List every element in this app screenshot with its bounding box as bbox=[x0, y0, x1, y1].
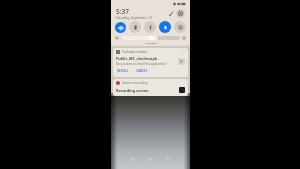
button[interactable]: Wi-Fi bbox=[115, 22, 126, 33]
staticText: Do you want to install this application? bbox=[116, 62, 167, 66]
staticText: Saturday, September 13 bbox=[116, 16, 152, 20]
button[interactable]: CANCEL bbox=[135, 68, 149, 74]
button[interactable]: Flashlight bbox=[144, 21, 156, 33]
button[interactable]: Auto rotate bbox=[174, 21, 186, 33]
button[interactable]: Do not disturb bbox=[159, 21, 171, 33]
staticText: Package installer bbox=[122, 50, 148, 54]
button[interactable]: Settings bbox=[176, 9, 185, 18]
staticText: ^ bbox=[183, 50, 185, 54]
staticText: 5:37 bbox=[116, 7, 129, 16]
button[interactable]: Screen recording bbox=[113, 79, 188, 96]
button[interactable] bbox=[115, 36, 186, 40]
staticText: Public_MC_cbuiler.apk bbox=[116, 56, 158, 61]
staticText: Recording screen bbox=[116, 88, 179, 93]
staticText: Screen recording bbox=[122, 81, 148, 85]
button[interactable]: INSTALL bbox=[116, 68, 130, 74]
staticText: INSTALL bbox=[117, 69, 129, 73]
staticText: M bbox=[180, 60, 183, 64]
button[interactable]: Bluetooth bbox=[129, 21, 141, 33]
staticText: CANCEL bbox=[136, 69, 148, 73]
button[interactable]: Package installer bbox=[113, 48, 188, 77]
button[interactable]: Edit tiles bbox=[167, 9, 176, 18]
button[interactable]: Stop recording bbox=[179, 87, 185, 93]
